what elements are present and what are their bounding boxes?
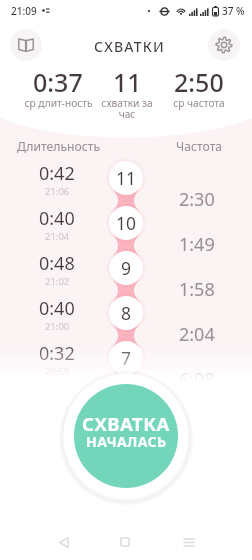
staticText: 21:00: [45, 320, 70, 333]
staticText: 2:04: [179, 322, 215, 347]
button[interactable]: Back: [49, 528, 77, 556]
staticText: СХВАТКИ: [94, 37, 165, 56]
staticText: 11: [113, 65, 142, 99]
button[interactable]: Guide: [10, 29, 42, 61]
button[interactable]: 0:40: [0, 206, 252, 251]
staticText: 10: [116, 211, 137, 235]
button[interactable]: СХВАТКА: [74, 384, 178, 488]
button[interactable]: 0:48: [0, 251, 252, 296]
staticText: 0:42: [39, 161, 75, 186]
staticText: 1:58: [179, 277, 215, 302]
button[interactable]: 0:42: [0, 161, 252, 206]
staticText: 0:48: [39, 251, 75, 276]
staticText: 1:49: [179, 232, 215, 257]
button[interactable]: Recent apps: [175, 528, 203, 556]
button[interactable]: Home: [111, 528, 139, 556]
staticText: 8: [121, 301, 132, 325]
staticText: 0:40: [39, 296, 75, 321]
button[interactable]: 0:32: [0, 341, 252, 386]
staticText: 37 %: [222, 4, 245, 18]
staticText: схватки за час: [101, 96, 153, 121]
staticText: 21:04: [45, 230, 70, 243]
staticText: 7: [121, 346, 132, 370]
staticText: 2:30: [179, 187, 215, 212]
staticText: ср длит-ность: [24, 96, 93, 110]
staticText: Длительность: [17, 138, 101, 155]
staticText: НАЧАЛАСЬ: [86, 432, 167, 451]
staticText: 21:09: [11, 4, 37, 18]
staticText: 21:06: [45, 185, 70, 198]
staticText: 9: [121, 256, 132, 280]
staticText: 0:32: [39, 341, 75, 366]
staticText: Частота: [176, 138, 223, 155]
staticText: СХВАТКА: [82, 411, 170, 436]
staticText: 11: [116, 166, 137, 190]
staticText: 2:50: [174, 65, 224, 99]
staticText: 20:58: [45, 365, 70, 378]
staticText: ср частота: [173, 96, 225, 110]
staticText: 21:02: [45, 275, 70, 288]
button[interactable]: 0:40: [0, 296, 252, 341]
button[interactable]: Settings: [208, 29, 240, 61]
staticText: 6:08: [179, 367, 215, 392]
staticText: 0:40: [39, 206, 75, 231]
staticText: 0:37: [33, 65, 83, 99]
